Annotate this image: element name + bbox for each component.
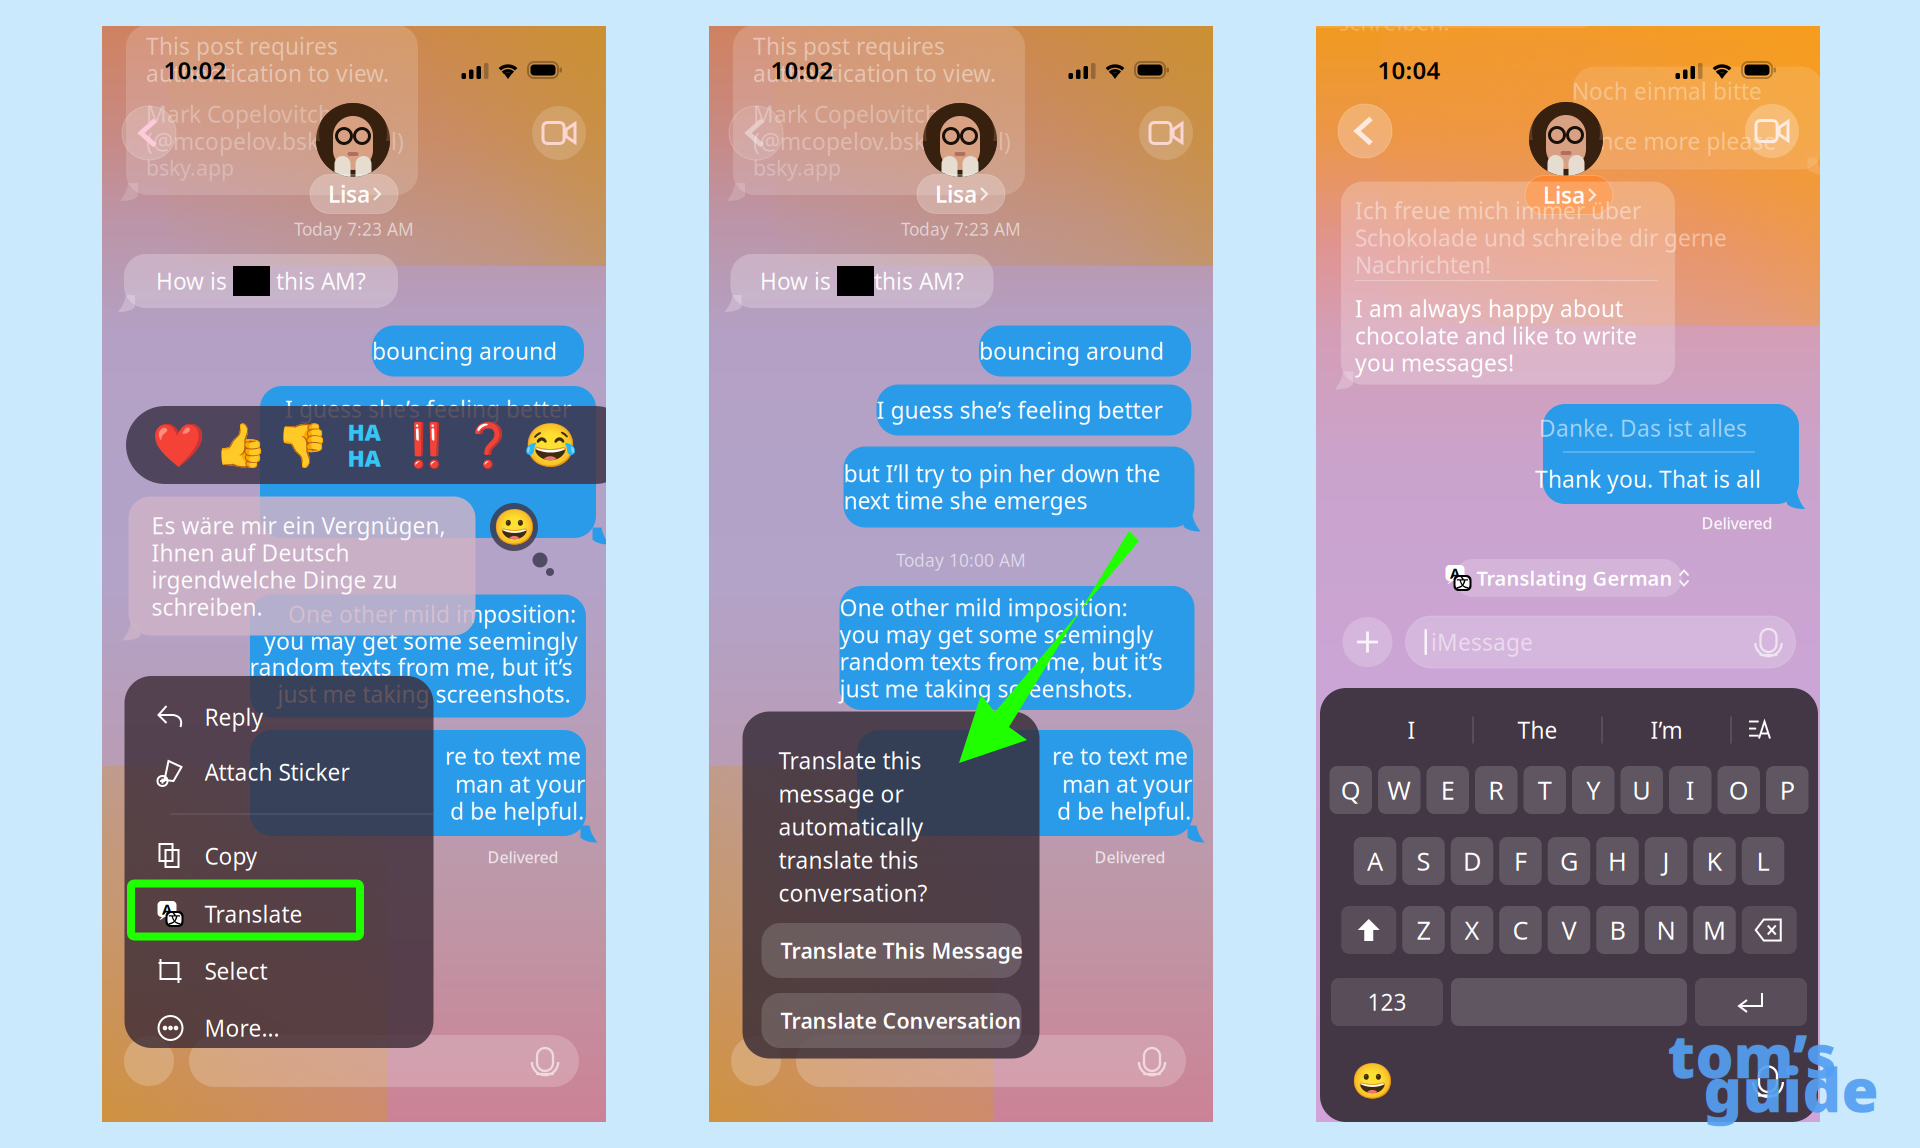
- button[interactable]: Reply: [124, 689, 433, 745]
- staticText: G: [1560, 844, 1578, 878]
- staticText: Copy: [204, 841, 257, 871]
- button[interactable]: FaceTime: [1745, 104, 1799, 158]
- button[interactable]: FaceTime: [532, 106, 586, 160]
- staticText: More...: [204, 1013, 279, 1043]
- button[interactable]: Z: [1402, 906, 1445, 954]
- staticText: man at your: [455, 769, 585, 799]
- staticText: conversation?: [778, 878, 927, 908]
- staticText: The: [1517, 715, 1557, 745]
- button[interactable]: Back: [729, 106, 783, 160]
- staticText: (@mcopelov.bsky.social): [753, 126, 1011, 156]
- button[interactable]: Lisa: [917, 174, 1005, 213]
- button[interactable]: I’m: [1602, 708, 1730, 752]
- staticText: Mark Copelovitch: [753, 99, 939, 129]
- button[interactable]: R: [1475, 766, 1517, 814]
- staticText: Thank you. That is all: [1535, 464, 1761, 494]
- button[interactable]: Back: [122, 106, 176, 160]
- button[interactable]: A: [124, 886, 433, 942]
- button[interactable]: Attach Sticker: [124, 744, 433, 800]
- staticText: M: [1703, 913, 1726, 947]
- staticText: How is: [156, 266, 233, 296]
- button[interactable]: Translate Conversation: [761, 993, 1021, 1048]
- button[interactable]: Dictation: [1745, 1058, 1791, 1104]
- staticText: A: [1450, 563, 1460, 583]
- staticText: Noch einmal bitte: [1572, 76, 1762, 106]
- staticText: Lisa: [935, 179, 977, 209]
- button[interactable]: Y: [1572, 766, 1614, 814]
- staticText: Ihnen auf Deutsch: [151, 538, 349, 568]
- staticText: V: [1561, 913, 1576, 947]
- staticText: ‼️: [399, 421, 452, 469]
- button[interactable]: Q: [1329, 766, 1372, 814]
- button[interactable]: V: [1548, 906, 1590, 954]
- staticText: translate this: [778, 845, 918, 875]
- button[interactable]: E: [1426, 766, 1469, 814]
- button[interactable]: L: [1742, 837, 1784, 885]
- button[interactable]: More...: [124, 1000, 433, 1056]
- button[interactable]: Select: [124, 943, 433, 999]
- button[interactable]: The: [1473, 708, 1601, 752]
- staticText: I: [1407, 715, 1415, 745]
- button[interactable]: Add attachment: [1342, 617, 1392, 667]
- button[interactable]: Copy: [124, 828, 433, 884]
- staticText: One other mild imposition:: [288, 599, 576, 629]
- button[interactable]: G: [1548, 837, 1590, 885]
- staticText: Q: [1341, 773, 1361, 807]
- button[interactable]: U: [1620, 766, 1663, 814]
- button[interactable]: [1695, 978, 1807, 1026]
- staticText: this AM?: [270, 266, 366, 296]
- staticText: 10:04: [1377, 54, 1440, 86]
- button[interactable]: A: [1454, 559, 1682, 597]
- staticText: How is: [760, 266, 837, 296]
- staticText: I guess she’s feeling better: [876, 395, 1162, 425]
- button[interactable]: M: [1693, 906, 1736, 954]
- button[interactable]: Lisa: [1525, 175, 1613, 214]
- button[interactable]: J: [1645, 837, 1687, 885]
- button[interactable]: Translate This Message: [761, 923, 1021, 978]
- staticText: 👍: [213, 421, 266, 469]
- button[interactable]: [1341, 906, 1396, 954]
- button[interactable]: P: [1766, 766, 1808, 814]
- staticText: Delivered: [1094, 846, 1165, 868]
- staticText: just me taking screenshots.: [839, 674, 1132, 704]
- button[interactable]: D: [1451, 837, 1493, 885]
- staticText: 😀: [492, 507, 535, 547]
- staticText: C: [1512, 913, 1528, 947]
- staticText: Translate: [204, 899, 302, 929]
- button[interactable]: H: [1596, 837, 1639, 885]
- staticText: Lisa: [1543, 180, 1585, 210]
- button[interactable]: Emoji: [1349, 1058, 1395, 1104]
- button[interactable]: Formatting: [1731, 708, 1787, 752]
- staticText: chocolate and like to write: [1355, 321, 1637, 351]
- button[interactable]: O: [1717, 766, 1760, 814]
- button[interactable]: 123: [1331, 978, 1443, 1026]
- staticText: Today 7:23 AM: [294, 217, 414, 240]
- button[interactable]: Lisa: [310, 174, 398, 213]
- button[interactable]: K: [1693, 837, 1736, 885]
- staticText: random texts from me, but it’s: [249, 652, 572, 682]
- button[interactable]: X: [1451, 906, 1493, 954]
- button[interactable]: A: [1354, 837, 1396, 885]
- button[interactable]: T: [1523, 766, 1566, 814]
- button[interactable]: Back: [1338, 104, 1392, 158]
- staticText: this AM?: [874, 266, 964, 296]
- button[interactable]: I: [1350, 708, 1472, 752]
- button[interactable]: F: [1499, 837, 1542, 885]
- button[interactable]: N: [1645, 906, 1687, 954]
- staticText: 10:02: [163, 54, 226, 86]
- button[interactable]: FaceTime: [1139, 106, 1193, 160]
- button[interactable]: I: [1669, 766, 1711, 814]
- staticText: P: [1780, 773, 1795, 807]
- button[interactable]: B: [1596, 906, 1639, 954]
- staticText: authentication to view.: [146, 58, 389, 88]
- staticText: R: [1488, 773, 1504, 807]
- staticText: Select: [204, 956, 267, 986]
- button[interactable]: [1742, 906, 1797, 954]
- button[interactable]: C: [1499, 906, 1542, 954]
- button[interactable]: W: [1378, 766, 1420, 814]
- button[interactable]: S: [1402, 837, 1445, 885]
- staticText: re to text me: [445, 741, 581, 771]
- staticText: I guess she’s feeling better: [285, 394, 571, 424]
- staticText: Z: [1416, 913, 1430, 947]
